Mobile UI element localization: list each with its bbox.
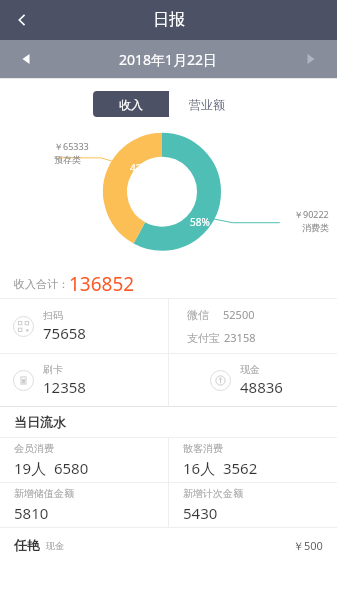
staticText: 任艳 — [14, 537, 40, 553]
staticText: 微信 — [187, 308, 209, 322]
button[interactable]: 现金 — [197, 354, 337, 406]
staticText: 5430 — [183, 503, 218, 523]
staticText: 支付宝 — [187, 331, 220, 345]
staticText: 5810 — [14, 503, 49, 523]
button[interactable]: 散客消费 — [169, 438, 337, 482]
staticText: 42% — [130, 161, 150, 175]
staticText: 预存类 — [54, 154, 81, 165]
staticText: 刷卡 — [43, 363, 63, 376]
staticText: ￥500 — [293, 538, 323, 553]
button[interactable]: 新增计次金额 — [169, 483, 337, 527]
staticText: 136852 — [69, 271, 135, 297]
staticText: 扫码 — [43, 309, 63, 322]
button[interactable]: 收入 — [93, 91, 169, 117]
button[interactable]: 会员消费 — [0, 438, 168, 482]
staticText: 现金 — [240, 363, 260, 376]
staticText: 16人 3562 — [183, 458, 258, 478]
staticText: 日报 — [153, 10, 185, 30]
staticText: 75658 — [43, 323, 86, 343]
button[interactable]: Back — [0, 0, 44, 40]
button[interactable]: 任艳 — [0, 528, 337, 562]
staticText: 48836 — [240, 377, 283, 397]
staticText: 2018年1月22日 — [119, 50, 218, 69]
button[interactable]: Next day — [285, 40, 337, 78]
button[interactable]: 刷卡 — [0, 354, 168, 406]
button[interactable]: 扫码 — [0, 299, 168, 353]
button[interactable]: 新增储值金额 — [0, 483, 168, 527]
staticText: ￥65333 — [54, 140, 89, 152]
staticText: 58% — [190, 215, 210, 229]
staticText: 会员消费 — [14, 442, 54, 455]
staticText: 19人 6580 — [14, 458, 89, 478]
staticText: 散客消费 — [183, 442, 223, 455]
staticText: 收入合计： — [14, 277, 69, 291]
staticText: 现金 — [46, 540, 64, 551]
staticText: 收入 — [119, 97, 143, 112]
staticText: 12358 — [43, 377, 86, 397]
staticText: 52500 — [223, 307, 255, 322]
staticText: 新增计次金额 — [183, 487, 243, 500]
button[interactable]: 微信 — [169, 299, 337, 353]
button[interactable]: 营业额 — [169, 91, 245, 117]
staticText: 消费类 — [302, 222, 329, 233]
staticText: 新增储值金额 — [14, 487, 74, 500]
button[interactable]: Previous day — [0, 40, 52, 78]
staticText: ￥90222 — [294, 208, 329, 220]
staticText: 当日流水 — [14, 414, 66, 430]
staticText: 营业额 — [189, 97, 225, 112]
staticText: 23158 — [224, 330, 256, 345]
